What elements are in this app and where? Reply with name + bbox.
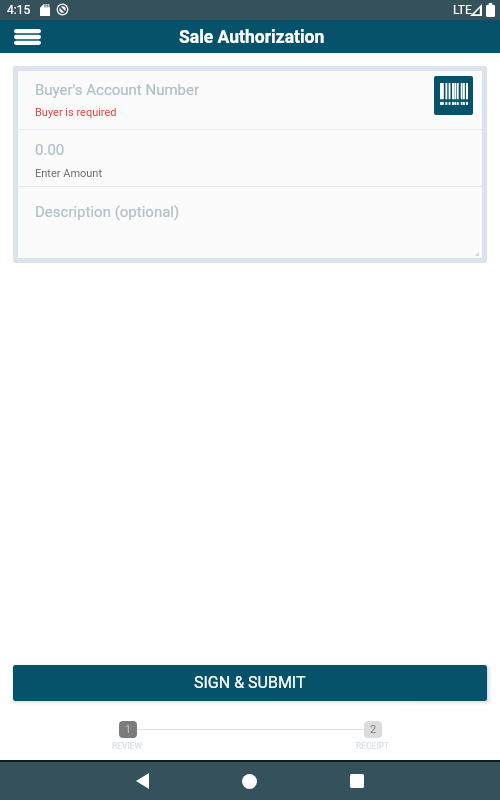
staticText: Buyer is required bbox=[35, 106, 117, 119]
staticText: 4:15 bbox=[7, 3, 31, 17]
staticText: 0.00 bbox=[35, 141, 65, 159]
staticText: 2 bbox=[370, 723, 377, 736]
staticText: Sale Authorization bbox=[179, 27, 325, 48]
staticText: LTE bbox=[453, 3, 472, 17]
button[interactable]: SIGN & SUBMIT bbox=[13, 665, 487, 701]
staticText: 1 bbox=[125, 723, 132, 736]
button[interactable]: 0.00 bbox=[18, 130, 482, 186]
staticText: Buyer's Account Number bbox=[35, 81, 200, 99]
button[interactable]: Open navigation menu bbox=[10, 20, 44, 53]
button[interactable]: 1 bbox=[100, 721, 155, 751]
button[interactable]: Buyer's Account Number bbox=[18, 71, 482, 129]
staticText: RECEIPT bbox=[356, 741, 390, 751]
button[interactable]: 2 bbox=[345, 721, 400, 751]
button[interactable]: Description (optional) bbox=[18, 187, 482, 258]
button[interactable]: Back bbox=[122, 762, 163, 800]
button[interactable]: Home bbox=[229, 762, 270, 800]
staticText: REVIEW bbox=[112, 741, 143, 751]
staticText: Description (optional) bbox=[35, 203, 180, 221]
staticText: SIGN & SUBMIT bbox=[194, 673, 306, 692]
button[interactable]: Recent apps bbox=[336, 762, 377, 800]
button[interactable]: Scan barcode bbox=[434, 76, 473, 115]
staticText: Enter Amount bbox=[35, 167, 103, 180]
